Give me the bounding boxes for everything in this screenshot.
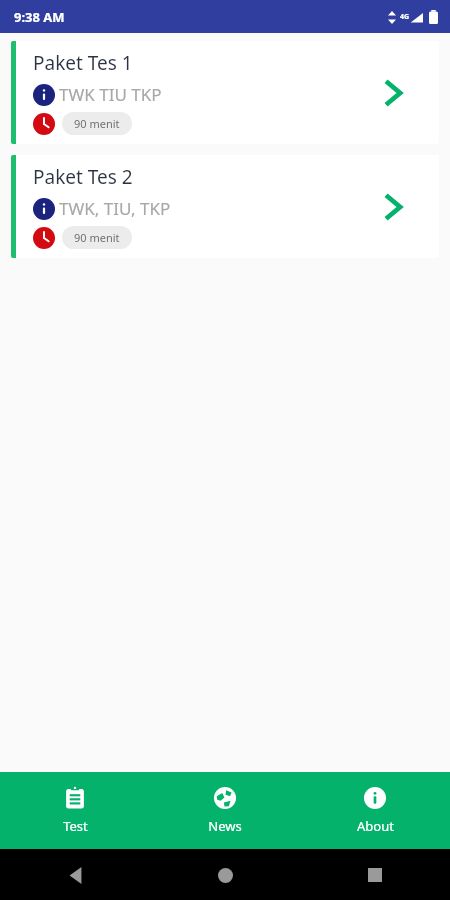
staticText: Test [63,817,88,835]
staticText: 90 menit [74,116,120,131]
button[interactable]: Paket Tes 1 [11,41,439,144]
button[interactable]: Test [0,778,150,843]
button[interactable]: Paket Tes 2 [11,155,439,258]
button[interactable]: Home [210,860,240,890]
button[interactable]: Open test package [377,190,411,224]
button[interactable]: Open test package [377,76,411,110]
staticText: TWK, TIU, TKP [59,197,171,220]
staticText: News [208,817,242,835]
staticText: Paket Tes 2 [33,164,133,190]
staticText: About [357,817,394,835]
button[interactable]: Recent apps [360,860,390,890]
button[interactable]: Back [60,860,90,890]
button[interactable]: News [150,778,300,843]
staticText: 9:38 AM [14,8,65,26]
staticText: TWK TIU TKP [59,83,162,106]
staticText: Paket Tes 1 [33,50,133,76]
staticText: 90 menit [74,230,120,245]
staticText: 4G [400,12,410,22]
button[interactable]: About [300,778,450,843]
